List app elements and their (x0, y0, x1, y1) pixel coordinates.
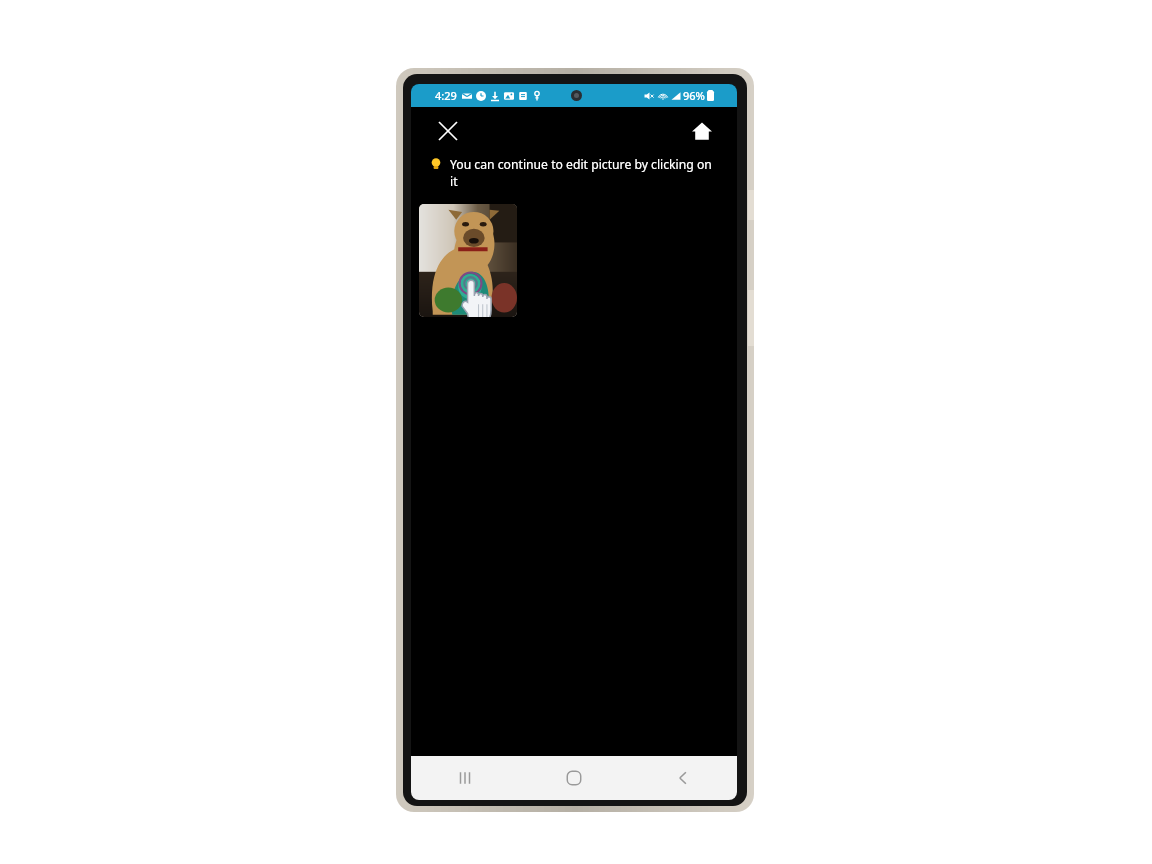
button[interactable]: Home (685, 114, 719, 148)
button[interactable]: Close (431, 114, 465, 148)
staticText: You can continue to edit picture by clic… (450, 156, 721, 190)
staticText: 96% (683, 88, 705, 103)
button[interactable]: Recent apps (411, 756, 519, 800)
button[interactable]: Home (519, 756, 628, 800)
button[interactable]: Back (628, 756, 737, 800)
staticText: 4:29 (435, 88, 457, 103)
button[interactable]: Edit picture (419, 204, 517, 317)
